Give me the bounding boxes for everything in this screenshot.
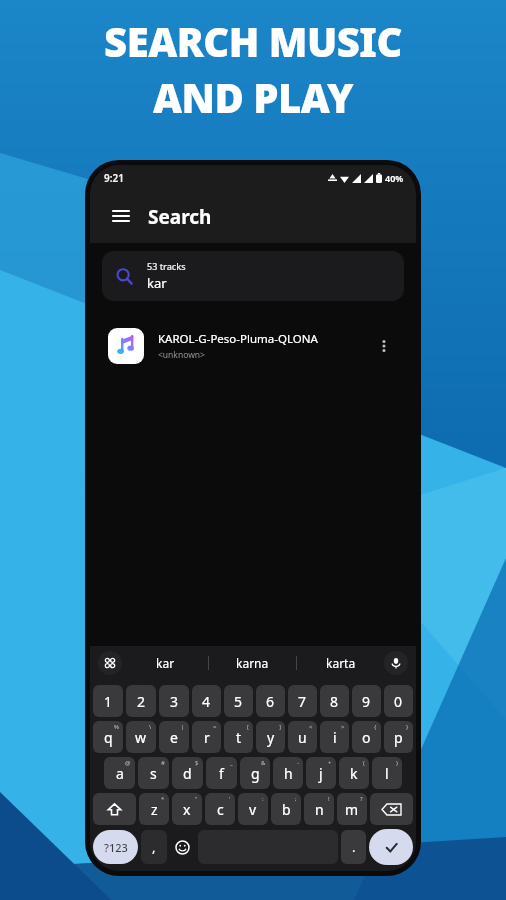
button[interactable]: 0: [384, 685, 413, 717]
button[interactable]: karna: [209, 646, 296, 680]
button[interactable]: b: [271, 793, 301, 825]
staticText: KAROL-G-Peso-Pluma-QLONA: [158, 331, 318, 347]
staticText: 3: [170, 692, 179, 711]
button[interactable]: 6: [256, 685, 285, 717]
button[interactable]: Open navigation menu: [106, 202, 136, 232]
staticText: h: [284, 764, 293, 783]
button[interactable]: Track options: [370, 332, 398, 360]
button[interactable]: karta: [297, 646, 384, 680]
staticText: c: [217, 800, 224, 819]
button[interactable]: i: [320, 721, 349, 753]
staticText: !: [328, 795, 330, 803]
staticText: ,: [152, 838, 156, 856]
staticText: #: [161, 759, 165, 767]
staticText: 2: [137, 692, 146, 711]
staticText: =: [213, 723, 217, 731]
button[interactable]: Shift: [93, 793, 136, 825]
button[interactable]: Emoji: [170, 830, 195, 864]
staticText: ": [195, 795, 198, 803]
staticText: 8: [330, 692, 339, 711]
staticText: <unknown>: [158, 349, 205, 361]
button[interactable]: Keyboard toolbar: [98, 651, 122, 675]
staticText: ': [229, 795, 231, 803]
button[interactable]: k: [339, 757, 369, 789]
button[interactable]: v: [238, 793, 268, 825]
staticText: ;: [295, 795, 297, 803]
staticText: g: [251, 764, 260, 783]
button[interactable]: 7: [288, 685, 317, 717]
button[interactable]: g: [240, 757, 270, 789]
button[interactable]: l: [372, 757, 402, 789]
staticText: 0: [394, 692, 403, 711]
button[interactable]: f: [206, 757, 237, 789]
staticText: ?: [360, 795, 363, 803]
staticText: b: [282, 800, 291, 819]
button[interactable]: n: [304, 793, 334, 825]
button[interactable]: .: [341, 830, 366, 864]
staticText: %: [114, 723, 119, 731]
button[interactable]: ?123: [93, 830, 138, 864]
staticText: .: [352, 838, 356, 856]
button[interactable]: j: [306, 757, 336, 789]
staticText: a: [116, 764, 124, 783]
staticText: +: [328, 759, 332, 767]
staticText: karta: [326, 655, 356, 671]
staticText: f: [219, 764, 224, 783]
button[interactable]: 53 tracks: [102, 251, 404, 301]
staticText: 40%: [385, 172, 404, 184]
staticText: *: [161, 795, 165, 803]
button[interactable]: 9: [352, 685, 381, 717]
button[interactable]: q: [93, 721, 123, 753]
button[interactable]: e: [159, 721, 189, 753]
staticText: 4: [202, 692, 211, 711]
staticText: n: [315, 800, 324, 819]
staticText: $: [195, 759, 199, 767]
staticText: q: [104, 728, 113, 747]
button[interactable]: 8: [320, 685, 349, 717]
staticText: o: [362, 728, 371, 747]
button[interactable]: 1: [93, 685, 123, 717]
button[interactable]: d: [172, 757, 203, 789]
button[interactable]: r: [192, 721, 221, 753]
button[interactable]: y: [256, 721, 285, 753]
staticText: i: [333, 728, 337, 747]
staticText: 53 tracks: [147, 260, 186, 272]
staticText: <: [309, 723, 313, 731]
staticText: |: [181, 723, 185, 731]
button[interactable]: 4: [192, 685, 221, 717]
button[interactable]: o: [352, 721, 381, 753]
button[interactable]: x: [172, 793, 202, 825]
button[interactable]: ,: [141, 830, 167, 864]
button[interactable]: KAROL-G-Peso-Pluma-QLONA: [90, 319, 416, 373]
button[interactable]: c: [205, 793, 235, 825]
button[interactable]: 2: [126, 685, 156, 717]
staticText: (: [363, 759, 365, 767]
staticText: _: [230, 759, 233, 767]
button[interactable]: u: [288, 721, 317, 753]
button[interactable]: p: [384, 721, 413, 753]
button[interactable]: kar: [122, 646, 208, 680]
staticText: 9: [362, 692, 371, 711]
staticText: 5: [234, 692, 243, 711]
button[interactable]: Voice input: [384, 651, 408, 675]
button[interactable]: m: [337, 793, 367, 825]
button[interactable]: t: [224, 721, 253, 753]
button[interactable]: z: [139, 793, 169, 825]
button[interactable]: a: [104, 757, 135, 789]
staticText: d: [183, 764, 192, 783]
button[interactable]: h: [273, 757, 303, 789]
button[interactable]: s: [138, 757, 169, 789]
staticText: \: [149, 723, 152, 731]
staticText: 7: [298, 692, 307, 711]
button[interactable]: w: [126, 721, 156, 753]
button[interactable]: 3: [159, 685, 189, 717]
staticText: s: [150, 764, 157, 783]
staticText: }: [406, 723, 409, 731]
button[interactable]: 5: [224, 685, 253, 717]
button[interactable]: Backspace: [370, 793, 413, 825]
button[interactable]: Enter: [369, 829, 413, 865]
staticText: z: [151, 800, 158, 819]
staticText: &: [261, 759, 266, 767]
staticText: v: [249, 800, 257, 819]
